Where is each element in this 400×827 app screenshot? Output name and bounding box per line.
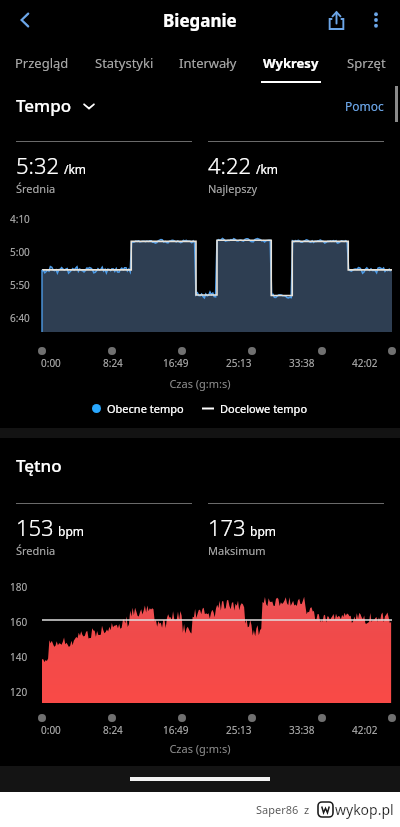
staticText: 160 [10,615,28,629]
staticText: 16:49 [163,723,189,737]
staticText: bpm [250,523,276,539]
button[interactable]: Sprzęt [332,40,400,84]
staticText: 33:38 [289,356,315,370]
staticText: 25:13 [226,356,252,370]
button[interactable]: Przegląd [0,40,83,84]
staticText: Wykresy [263,54,319,72]
staticText: 16:49 [163,356,189,370]
button[interactable]: Back [6,1,44,39]
staticText: 25:13 [226,723,252,737]
staticText: 5:50 [10,278,30,292]
staticText: 140 [10,650,28,664]
staticText: Przegląd [15,54,69,72]
button[interactable]: Tempo [16,94,96,117]
staticText: 0:00 [41,356,61,370]
staticText: 4:10 [10,212,30,226]
staticText: Maksimum [208,543,266,558]
staticText: Tempo [16,94,72,117]
staticText: 6:40 [10,311,30,325]
button[interactable]: Statystyki [83,40,166,84]
staticText: Średnia [16,543,56,558]
staticText: Statystyki [95,54,154,72]
staticText: Obecne tempo [107,401,184,416]
staticText: 0:00 [41,723,61,737]
staticText: Sprzęt [347,54,386,72]
staticText: 8:24 [103,723,123,737]
staticText: bpm [58,523,84,539]
staticText: 4:22 [208,150,252,180]
staticText: 42:02 [352,723,378,737]
button[interactable]: Wykresy [249,40,332,84]
staticText: 120 [10,685,28,699]
staticText: Interwały [179,54,237,72]
button[interactable]: Share [316,0,356,40]
staticText: Średnia [16,181,56,196]
staticText: Docelowe tempo [220,401,308,416]
staticText: 180 [10,580,28,594]
button[interactable]: Interwały [166,40,249,84]
staticText: 42:02 [352,356,378,370]
button[interactable]: More options [356,0,396,40]
staticText: Pomoc [345,98,384,114]
staticText: 153 [16,512,54,542]
staticText: 8:24 [103,356,123,370]
staticText: Czas (g:m:s) [0,741,400,756]
staticText: Saper86 z [256,802,310,817]
staticText: 173 [208,512,246,542]
staticText: Bieganie [163,9,237,32]
button[interactable]: Pomoc [345,98,384,114]
staticText: Najlepszy [208,181,258,196]
staticText: 33:38 [289,723,315,737]
staticText: 5:00 [10,245,30,259]
staticText: Czas (g:m:s) [0,376,400,391]
staticText: /km [256,161,279,177]
staticText: Tętno [16,454,62,477]
staticText: 5:32 [16,150,60,180]
staticText: /km [64,161,87,177]
staticText: wykop.pl [335,800,394,819]
